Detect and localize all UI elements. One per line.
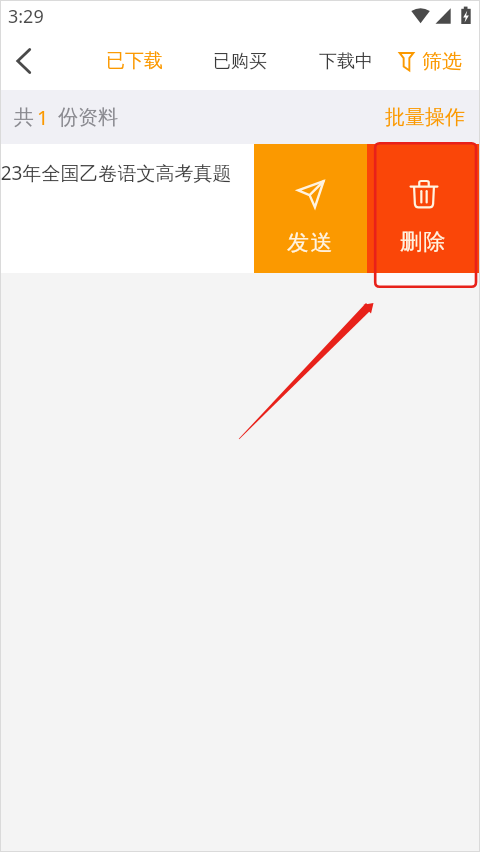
staticText: 2023年全国乙卷语文高考真题 xyxy=(0,160,232,186)
staticText: 删除 xyxy=(400,228,448,256)
button[interactable]: Back xyxy=(2,32,46,90)
button[interactable]: 筛选 xyxy=(399,32,462,90)
button[interactable]: 删除 xyxy=(367,144,480,273)
button[interactable]: 已购买 xyxy=(204,32,276,90)
staticText: 共 xyxy=(14,105,34,130)
button[interactable]: 发送 xyxy=(254,144,367,273)
staticText: 筛选 xyxy=(422,49,462,74)
staticText: 已购买 xyxy=(213,50,267,73)
staticText: 份资料 xyxy=(58,105,118,130)
staticText: 发送 xyxy=(287,229,335,257)
staticText: 批量操作 xyxy=(385,105,465,130)
staticText: 下载中 xyxy=(319,50,373,73)
button[interactable]: 批量操作 xyxy=(385,90,465,144)
button[interactable]: 已下载 xyxy=(96,32,172,90)
button[interactable]: 下载中 xyxy=(310,32,382,90)
staticText: 已下载 xyxy=(106,49,163,73)
staticText: 1 xyxy=(37,104,49,131)
staticText: 3:29 xyxy=(8,4,44,29)
